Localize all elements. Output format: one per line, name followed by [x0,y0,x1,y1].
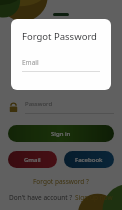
button[interactable]: Gmail [8,151,57,168]
staticText: Forgot Password [22,30,97,43]
staticText: Sign up now [75,193,113,202]
button[interactable]: Forgot password ? [8,177,114,186]
staticText: Don't have account ? [9,193,73,202]
button[interactable]: Facebook [64,151,114,168]
staticText: Sign in [51,130,71,138]
staticText: Password [25,100,53,108]
staticText: Facebook [75,156,103,164]
staticText: Email [22,58,39,67]
staticText: Forgot password ? [33,177,89,186]
button[interactable]: Sign in [8,125,114,142]
button[interactable]: Sign up now [75,193,113,202]
staticText: Gmail [24,156,41,164]
